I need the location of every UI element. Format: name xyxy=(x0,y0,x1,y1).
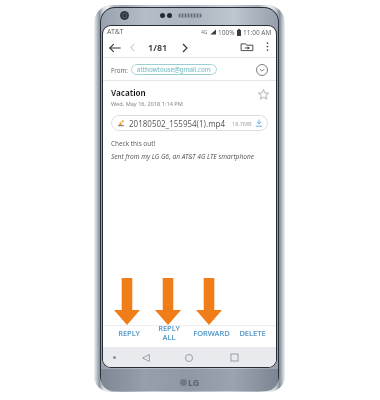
button[interactable]: Move to folder xyxy=(238,38,255,55)
staticText: Check this out! xyxy=(111,139,156,148)
button[interactable]: DELETE xyxy=(231,323,276,343)
staticText: Vacation xyxy=(111,87,146,98)
staticText: From: xyxy=(111,66,128,74)
staticText: LG xyxy=(188,376,200,388)
button[interactable]: Back xyxy=(138,350,153,365)
button[interactable]: 1/81 xyxy=(145,39,170,55)
staticText: 20180502_155954(1).mp4 xyxy=(129,118,226,129)
button[interactable]: REPLY ALL xyxy=(149,323,190,343)
button[interactable]: Previous message xyxy=(124,39,140,55)
staticText: 100% xyxy=(218,28,235,37)
staticText: REPLY xyxy=(118,328,140,338)
button[interactable]: 20180502_155954(1).mp4 xyxy=(111,115,268,131)
button[interactable]: More options xyxy=(259,38,275,54)
button[interactable]: atthowtouse@gmail.com xyxy=(131,64,217,75)
staticText: AT&T xyxy=(107,27,124,37)
button[interactable]: Show details xyxy=(254,62,270,78)
staticText: Sent from my LG G6, an AT&T 4G LTE smart… xyxy=(111,152,255,161)
button[interactable]: Star xyxy=(255,86,271,102)
button[interactable]: REPLY xyxy=(103,323,149,343)
staticText: atthowtouse@gmail.com xyxy=(137,65,211,74)
staticText: 1/81 xyxy=(148,41,168,53)
staticText: FORWARD xyxy=(193,328,230,338)
button[interactable]: FORWARD xyxy=(190,323,231,343)
button[interactable]: Back xyxy=(106,39,123,56)
button[interactable]: Recent apps xyxy=(227,350,242,365)
button[interactable]: Next message xyxy=(176,39,193,56)
staticText: REPLY ALL xyxy=(158,323,180,343)
staticText: Wed, May 16, 2018 1:14 PM xyxy=(111,100,183,108)
button[interactable]: Home xyxy=(181,350,196,365)
staticText: 18.7MB xyxy=(232,120,252,127)
staticText: 4G xyxy=(201,29,208,36)
button[interactable]: Notification dot xyxy=(108,351,121,364)
staticText: DELETE xyxy=(239,328,266,338)
staticText: 11:00 AM xyxy=(243,28,272,37)
